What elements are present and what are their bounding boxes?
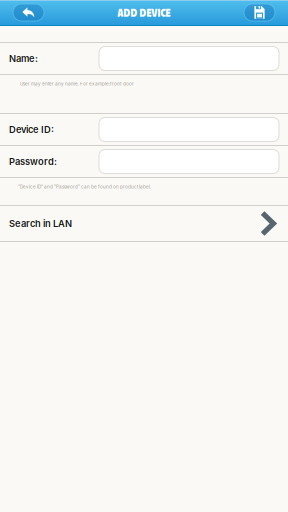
staticText: Device ID:	[9, 124, 54, 135]
staticText: User may enter any name. For example:fro…	[20, 81, 134, 87]
button[interactable]: Search in LAN	[0, 206, 288, 241]
staticText: ADD DEVICE	[117, 6, 170, 19]
button[interactable]: Save	[244, 4, 275, 21]
staticText: Search in LAN	[9, 218, 72, 229]
staticText: "Device ID" and "Password" can be found …	[18, 184, 151, 189]
staticText: Password:	[9, 156, 57, 167]
staticText: Name:	[9, 53, 38, 64]
button[interactable]: Back	[13, 4, 44, 21]
